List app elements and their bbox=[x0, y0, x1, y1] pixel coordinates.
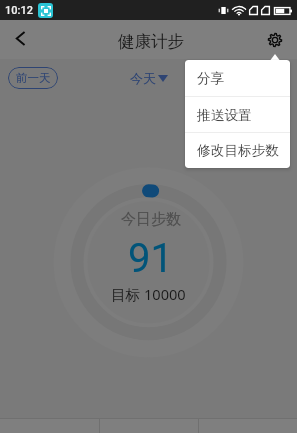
staticText: 健康计步 bbox=[118, 31, 184, 52]
button[interactable]: 推送设置 bbox=[185, 97, 290, 133]
staticText: 91 bbox=[128, 235, 173, 282]
button[interactable]: Settings bbox=[251, 20, 297, 59]
button[interactable]: 今天 bbox=[130, 70, 168, 86]
staticText: 分享 bbox=[197, 70, 225, 87]
button[interactable]: 前一天 bbox=[8, 67, 58, 89]
staticText: 推送设置 bbox=[197, 107, 252, 124]
staticText: 前一天 bbox=[16, 71, 51, 85]
staticText: 10:12 bbox=[5, 4, 33, 17]
button[interactable]: 修改目标步数 bbox=[185, 133, 290, 168]
button[interactable]: Back bbox=[0, 20, 38, 59]
staticText: 目标 10000 bbox=[111, 284, 186, 304]
staticText: 今天 bbox=[130, 70, 156, 86]
staticText: 修改目标步数 bbox=[197, 142, 280, 159]
staticText: 今日步数 bbox=[121, 210, 181, 229]
button[interactable]: 分享 bbox=[185, 60, 290, 97]
